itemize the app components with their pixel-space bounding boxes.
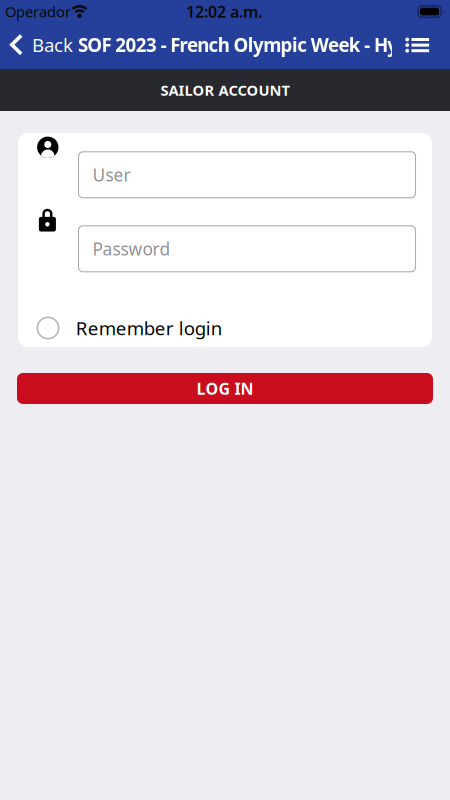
button[interactable]: LOG IN <box>17 373 433 404</box>
button[interactable]: Password <box>78 226 415 272</box>
staticText: SAILOR ACCOUNT <box>160 80 289 100</box>
staticText: Password <box>92 237 170 260</box>
staticText: Operador <box>5 2 71 21</box>
button[interactable]: Remember login <box>37 313 413 343</box>
button[interactable] <box>405 37 429 53</box>
staticText: LOG IN <box>196 378 253 399</box>
staticText: Back <box>32 32 73 57</box>
button[interactable]: Back <box>10 30 110 60</box>
staticText: User <box>92 163 130 186</box>
staticText: Remember login <box>76 316 223 340</box>
button[interactable]: User <box>78 152 415 198</box>
staticText: 12:02 a.m. <box>186 1 262 22</box>
staticText: SOF 2023 - French Olympic Week - Hy <box>78 32 398 57</box>
